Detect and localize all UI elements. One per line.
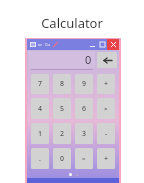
staticText: . (39, 154, 41, 164)
button[interactable]: . (31, 148, 49, 169)
button[interactable]: Backspace (97, 52, 117, 68)
staticText: 6 (82, 104, 87, 114)
staticText: Cu (45, 42, 50, 47)
button[interactable]: 4 (31, 98, 49, 119)
staticText: Calculator (0, 14, 144, 32)
button[interactable]: Menu (29, 41, 36, 48)
staticText: - (105, 129, 108, 139)
button[interactable]: Close (107, 39, 119, 50)
staticText: 9 (82, 79, 87, 89)
button[interactable]: 9 (75, 74, 93, 94)
button[interactable]: Page 1 (69, 173, 72, 176)
button[interactable]: 8 (53, 74, 71, 94)
staticText: 4 (38, 104, 43, 114)
staticText: 3 (82, 129, 87, 139)
staticText: 8 (60, 79, 65, 89)
button[interactable]: Minimize (87, 39, 97, 50)
staticText: + (104, 154, 109, 164)
button[interactable]: × (97, 98, 115, 119)
button[interactable]: Maximize (97, 39, 107, 50)
staticText: 1 (38, 129, 43, 139)
button[interactable]: 7 (31, 74, 49, 94)
staticText: 7 (38, 79, 43, 89)
button[interactable]: + (97, 148, 115, 169)
button[interactable]: + (97, 74, 115, 94)
button[interactable]: 0 (29, 51, 95, 68)
staticText: or (38, 42, 43, 47)
button[interactable]: Edit (52, 41, 59, 48)
button[interactable]: or (38, 40, 43, 49)
staticText: = (82, 155, 86, 163)
button[interactable]: 0 (53, 148, 71, 169)
staticText: × (104, 105, 108, 113)
staticText: 0 (60, 154, 65, 164)
staticText: 0 (85, 52, 92, 67)
button[interactable]: 1 (31, 123, 49, 144)
button[interactable]: - (97, 123, 115, 144)
button[interactable]: 6 (75, 98, 93, 119)
button[interactable]: = (75, 148, 93, 169)
staticText: 5 (60, 104, 65, 114)
button[interactable]: 2 (53, 123, 71, 144)
staticText: 2 (60, 129, 65, 139)
button[interactable]: 5 (53, 98, 71, 119)
button[interactable]: 3 (75, 123, 93, 144)
button[interactable]: Cu (45, 40, 50, 49)
staticText: + (104, 79, 109, 89)
